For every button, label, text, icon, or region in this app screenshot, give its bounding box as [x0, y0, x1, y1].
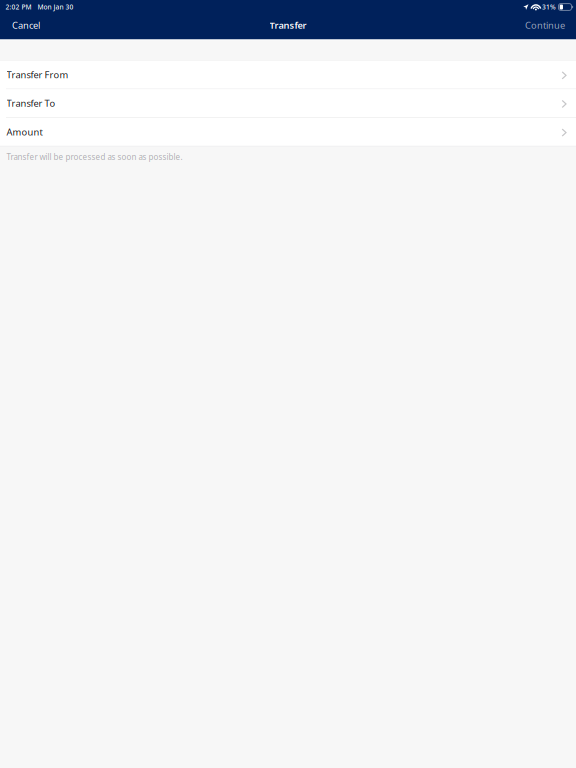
button[interactable]: Continue	[516, 14, 576, 36]
button[interactable]: Transfer To	[0, 89, 576, 117]
staticText: Cancel	[12, 19, 40, 31]
staticText: Transfer will be processed as soon as po…	[6, 151, 182, 162]
button[interactable]: Transfer From	[0, 61, 576, 89]
staticText: Amount	[6, 126, 42, 138]
button[interactable]: Amount	[0, 118, 576, 146]
staticText: Transfer To	[6, 97, 55, 109]
staticText: Transfer	[269, 19, 306, 31]
staticText: 2:02 PM	[5, 3, 31, 11]
staticText: Transfer From	[6, 68, 68, 81]
staticText: 31%	[542, 3, 556, 11]
staticText: Continue	[525, 19, 565, 31]
staticText: Mon Jan 30	[37, 3, 73, 11]
button[interactable]: Cancel	[0, 14, 49, 36]
